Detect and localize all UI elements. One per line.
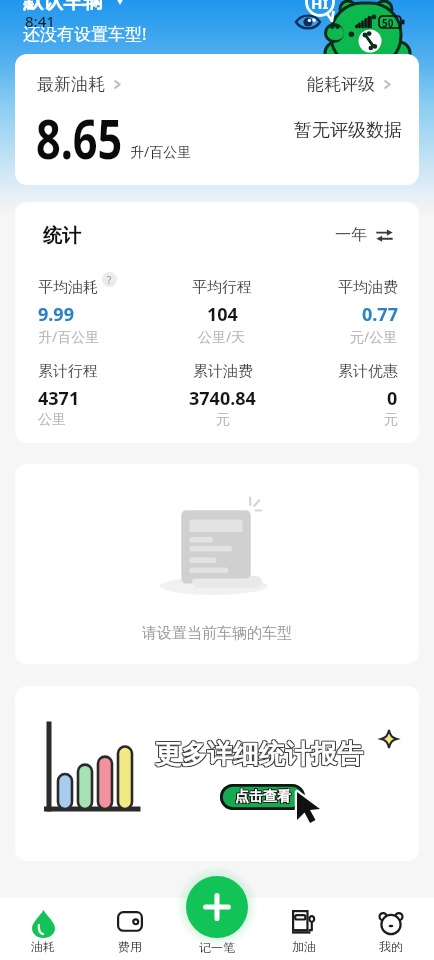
staticText: 点击查看 bbox=[234, 788, 290, 806]
staticText: 点击查看 bbox=[234, 789, 290, 807]
staticText: 更多详细统计报告 bbox=[156, 739, 364, 772]
staticText: 点击查看 bbox=[236, 789, 292, 807]
staticText: 9.99 bbox=[38, 302, 74, 327]
staticText: 点击查看 bbox=[234, 787, 290, 805]
staticText: 统计 bbox=[43, 224, 81, 248]
other: 费用 bbox=[117, 910, 143, 938]
staticText: 还没有设置车型! bbox=[23, 22, 147, 45]
staticText: 104 bbox=[207, 302, 238, 327]
staticText: 最新油耗 bbox=[37, 74, 105, 95]
button[interactable]: 更多详细统计报告 bbox=[15, 686, 419, 861]
staticText: 平均行程 bbox=[192, 278, 252, 297]
staticText: 元 bbox=[384, 411, 398, 429]
staticText: 0.77 bbox=[362, 302, 398, 327]
button[interactable]: 记一笔 bbox=[186, 876, 248, 938]
other: 油耗 bbox=[32, 910, 55, 938]
staticText: 费用 bbox=[118, 939, 142, 954]
button[interactable]: 一年 bbox=[335, 225, 393, 245]
staticText: 点击查看 bbox=[236, 787, 292, 805]
staticText: 记一笔 bbox=[199, 940, 235, 955]
staticText: 暂无评级数据 bbox=[294, 119, 402, 142]
staticText: 更多详细统计报告 bbox=[156, 737, 364, 770]
staticText: 点击查看 bbox=[235, 788, 291, 806]
button[interactable]: 费用 bbox=[86, 898, 173, 960]
staticText: 0 bbox=[387, 386, 398, 411]
button[interactable]: 最新油耗 bbox=[37, 74, 124, 95]
button[interactable]: 我的 bbox=[347, 898, 434, 960]
staticText: 点击查看 bbox=[235, 789, 291, 807]
button[interactable]: 平均油费 bbox=[338, 278, 398, 346]
staticText: 公里/天 bbox=[198, 327, 246, 346]
staticText: 8.65 bbox=[36, 101, 122, 175]
button[interactable]: 加油 bbox=[260, 898, 347, 960]
button[interactable]: 统计 bbox=[15, 202, 419, 443]
staticText: 请设置当前车辆的车型 bbox=[142, 624, 292, 643]
staticText: 一年 bbox=[335, 225, 367, 245]
button[interactable]: 累计行程 bbox=[38, 362, 98, 429]
staticText: 更多详细统计报告 bbox=[155, 737, 363, 770]
other: 加油 bbox=[292, 910, 315, 938]
staticText: 默认车辆 bbox=[23, 0, 103, 14]
button[interactable]: 油耗 bbox=[0, 898, 86, 960]
staticText: 升/百公里 bbox=[38, 327, 100, 346]
staticText: 3740.84 bbox=[189, 386, 256, 411]
button[interactable]: 请设置当前车辆的车型 bbox=[15, 464, 419, 664]
staticText: 点击查看 bbox=[235, 787, 291, 805]
other: 切换 bbox=[376, 227, 393, 244]
staticText: 更多详细统计报告 bbox=[154, 737, 362, 770]
button[interactable]: 累计油费 bbox=[189, 362, 256, 429]
button[interactable]: 点击查看 bbox=[220, 784, 305, 810]
staticText: ? bbox=[107, 273, 112, 287]
button[interactable]: 平均行程 bbox=[192, 278, 252, 346]
button[interactable]: 平均油耗 bbox=[38, 278, 117, 346]
staticText: 元 bbox=[216, 411, 230, 429]
staticText: 我的 bbox=[379, 939, 403, 954]
button[interactable]: 记一笔 bbox=[173, 898, 260, 960]
staticText: 平均油费 bbox=[338, 278, 398, 297]
staticText: 累计行程 bbox=[38, 362, 98, 381]
staticText: 更多详细统计报告 bbox=[154, 738, 362, 771]
staticText: HI bbox=[311, 0, 329, 13]
other: 我的 bbox=[379, 910, 403, 938]
button[interactable]: 能耗评级 bbox=[307, 74, 394, 95]
staticText: 能耗评级 bbox=[307, 74, 375, 95]
staticText: 更多详细统计报告 bbox=[155, 739, 363, 772]
staticText: 公里 bbox=[38, 411, 66, 429]
button[interactable]: 累计优惠 bbox=[338, 362, 398, 429]
staticText: 更多详细统计报告 bbox=[156, 738, 364, 771]
staticText: 累计优惠 bbox=[338, 362, 398, 381]
staticText: 更多详细统计报告 bbox=[155, 738, 363, 771]
staticText: 8:41 bbox=[25, 11, 55, 31]
staticText: 点击查看 bbox=[236, 788, 292, 806]
button[interactable]: 最新油耗 bbox=[15, 54, 419, 185]
staticText: 累计油费 bbox=[193, 362, 253, 381]
staticText: 加油 bbox=[292, 939, 316, 954]
staticText: 更多详细统计报告 bbox=[154, 739, 362, 772]
staticText: 升/百公里 bbox=[130, 142, 192, 161]
staticText: 50 bbox=[382, 16, 394, 30]
staticText: 平均油耗 bbox=[38, 278, 98, 297]
staticText: 油耗 bbox=[31, 939, 55, 954]
staticText: 元/公里 bbox=[350, 327, 398, 346]
staticText: 4371 bbox=[38, 386, 80, 411]
